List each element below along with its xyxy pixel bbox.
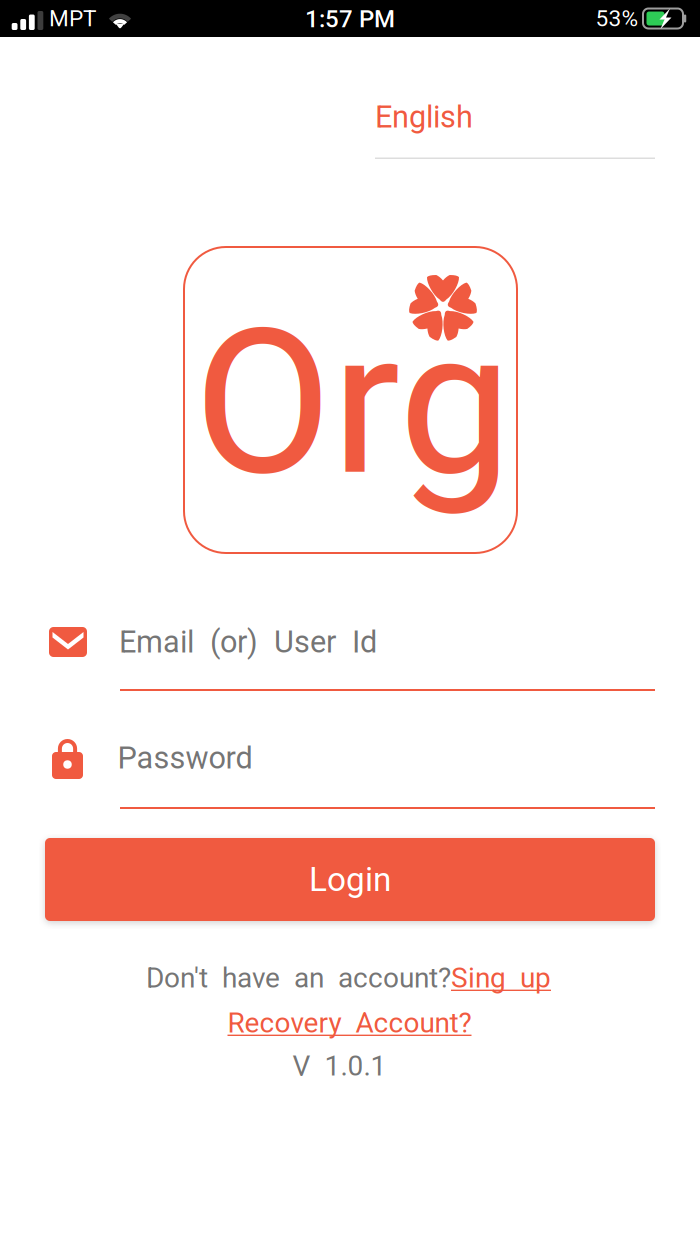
staticText: 1:57 PM xyxy=(305,5,395,33)
staticText: Recovery Account? xyxy=(227,1007,471,1039)
staticText: English xyxy=(375,99,473,135)
staticText: Email (or) User Id xyxy=(119,624,377,660)
staticText: Don't have an account? xyxy=(146,962,451,994)
staticText: Sing up xyxy=(451,962,551,994)
button[interactable]: Sing up xyxy=(451,962,551,994)
button[interactable]: Login xyxy=(45,838,655,921)
staticText: 53% xyxy=(595,5,638,32)
staticText: MPT xyxy=(49,5,97,32)
staticText: Login xyxy=(309,860,391,899)
staticText: Password xyxy=(117,740,252,776)
button[interactable]: Recovery Account? xyxy=(227,1007,471,1039)
staticText: V 1.0.1 xyxy=(292,1050,386,1082)
button[interactable]: English xyxy=(375,97,655,159)
staticText: Org xyxy=(194,286,512,521)
